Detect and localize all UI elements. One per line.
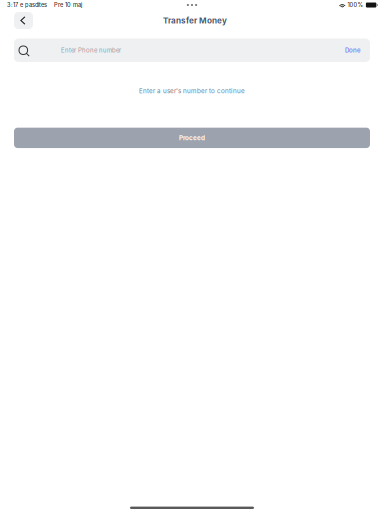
button[interactable]: Proceed <box>14 128 370 148</box>
button[interactable]: Done <box>345 41 370 59</box>
staticText: Enter a user's number to continue <box>139 87 245 95</box>
staticText: Pre 10 maj <box>54 2 82 8</box>
staticText: Proceed <box>179 134 205 142</box>
staticText: Transfer Money <box>163 16 227 25</box>
staticText: Done <box>345 46 361 54</box>
staticText: Enter Phone number <box>61 47 121 54</box>
staticText: 3:17 e pasdites <box>7 2 47 8</box>
button[interactable]: Back <box>14 12 33 29</box>
staticText: 100% <box>347 2 363 8</box>
